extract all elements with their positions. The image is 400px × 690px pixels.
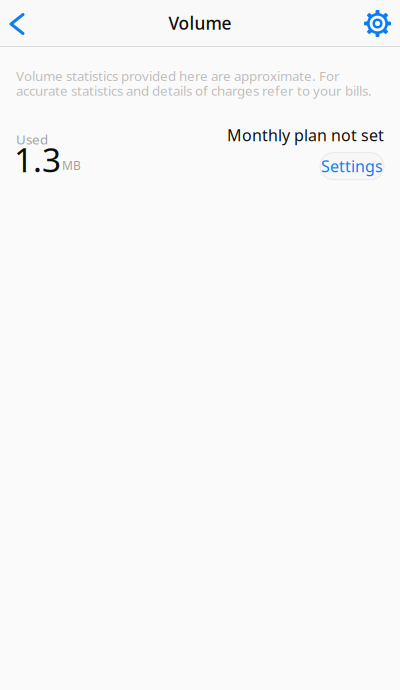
staticText: Volume — [168, 11, 231, 34]
button[interactable]: Back — [0, 0, 41, 46]
staticText: Used — [16, 130, 48, 148]
staticText: MB — [62, 157, 81, 173]
staticText: Monthly plan not set — [227, 124, 384, 146]
button[interactable]: Settings — [364, 0, 400, 46]
button[interactable]: Settings — [320, 153, 384, 180]
staticText: Volume statistics provided here are appr… — [16, 67, 372, 99]
staticText: 1.3 — [14, 137, 61, 181]
staticText: Settings — [321, 155, 383, 177]
